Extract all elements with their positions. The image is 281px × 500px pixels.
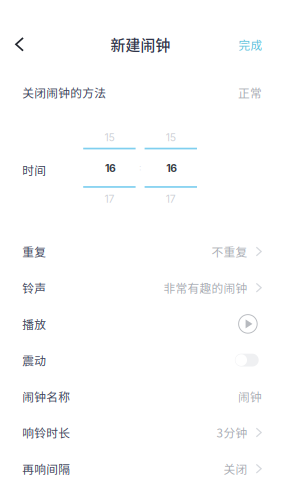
staticText: 16: [166, 162, 177, 175]
staticText: 播放: [22, 315, 46, 332]
staticText: 闹钟名称: [22, 388, 70, 405]
staticText: 15: [166, 131, 176, 144]
staticText: 17: [104, 193, 114, 205]
staticText: 不重复: [211, 243, 247, 260]
staticText: 重复: [22, 243, 46, 260]
staticText: 时间: [22, 161, 46, 178]
staticText: 闹钟: [238, 388, 262, 405]
staticText: 关闭闹钟的方法: [22, 84, 106, 101]
staticText: 震动: [22, 352, 46, 369]
staticText: 非常有趣的闹钟: [163, 279, 247, 296]
staticText: 再响间隔: [22, 460, 70, 477]
button[interactable]: 完成: [232, 34, 270, 56]
staticText: :: [139, 162, 141, 173]
button[interactable]: Back: [6, 31, 32, 57]
button[interactable]: 关闭闹钟的方法: [0, 75, 281, 109]
staticText: 正常: [238, 84, 262, 101]
staticText: 3分钟: [216, 424, 247, 441]
staticText: 17: [166, 193, 176, 205]
button[interactable]: 响铃时长: [0, 414, 281, 451]
button[interactable]: 铃声: [0, 270, 281, 306]
staticText: 完成: [239, 36, 263, 53]
button[interactable]: 重复: [0, 233, 281, 270]
staticText: 铃声: [22, 279, 46, 296]
button[interactable]: 再响间隔: [0, 451, 281, 487]
staticText: 15: [104, 131, 114, 144]
staticText: 新建闹钟: [110, 34, 170, 55]
staticText: 16: [105, 162, 116, 175]
button[interactable]: 震动: [0, 342, 281, 378]
button[interactable]: 闹钟名称: [0, 378, 281, 414]
button[interactable]: 播放: [0, 306, 281, 342]
staticText: 关闭: [223, 460, 247, 477]
staticText: 响铃时长: [22, 424, 70, 441]
